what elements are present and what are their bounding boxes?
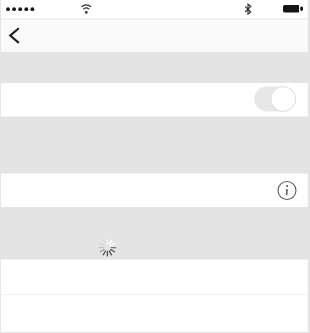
button[interactable] — [0, 173, 310, 207]
button[interactable] — [252, 85, 298, 113]
button[interactable] — [4, 21, 30, 47]
button[interactable] — [0, 83, 310, 117]
button[interactable] — [276, 180, 298, 202]
